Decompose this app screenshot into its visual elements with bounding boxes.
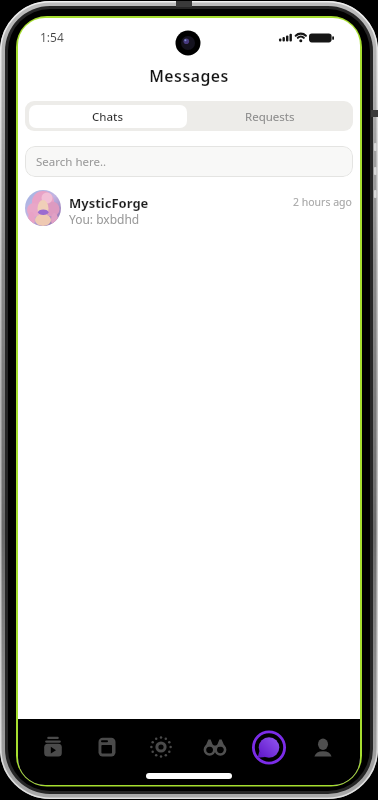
staticText: Requests [245, 109, 295, 125]
staticText: 2 hours ago [293, 195, 352, 209]
staticText: Chats [92, 109, 124, 125]
button[interactable]: Chats [29, 105, 187, 128]
button[interactable]: Search here.. [25, 146, 353, 177]
staticText: MysticForge [69, 194, 149, 212]
button[interactable] [80, 719, 134, 785]
button[interactable] [26, 719, 80, 785]
staticText: 1:54 [40, 29, 64, 45]
button[interactable] [242, 719, 296, 785]
staticText: Search here.. [36, 154, 107, 170]
staticText: Messages [18, 65, 360, 87]
staticText: You: bxbdhd [69, 211, 140, 227]
button[interactable] [134, 719, 188, 785]
button[interactable]: MysticForge [18, 190, 360, 244]
button[interactable] [188, 719, 242, 785]
button[interactable]: Requests [191, 105, 349, 128]
button[interactable] [296, 719, 350, 785]
